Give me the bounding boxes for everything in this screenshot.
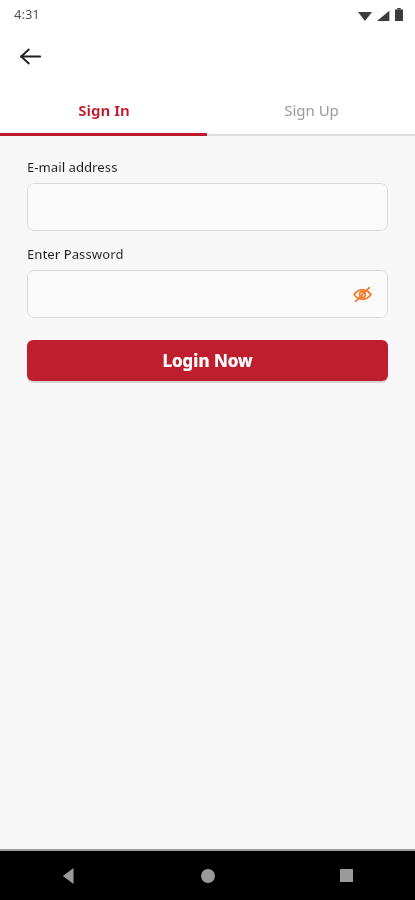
button[interactable]: Show password <box>349 281 375 307</box>
button[interactable]: Home <box>139 851 277 900</box>
button[interactable]: Back <box>10 36 50 76</box>
button[interactable]: Recent apps <box>277 851 415 900</box>
button[interactable]: Show password <box>27 270 388 318</box>
button[interactable]: Sign Up <box>207 84 415 136</box>
staticText: E-mail address <box>27 158 118 176</box>
staticText: 4:31 <box>14 5 40 23</box>
button[interactable]: Back <box>0 851 139 900</box>
button[interactable]: Sign In <box>0 84 207 136</box>
staticText: Login Now <box>162 349 253 372</box>
button[interactable]: Login Now <box>27 340 388 381</box>
button[interactable] <box>27 183 388 231</box>
staticText: Sign Up <box>284 100 339 120</box>
staticText: Sign In <box>78 100 130 120</box>
staticText: Enter Password <box>27 245 124 263</box>
